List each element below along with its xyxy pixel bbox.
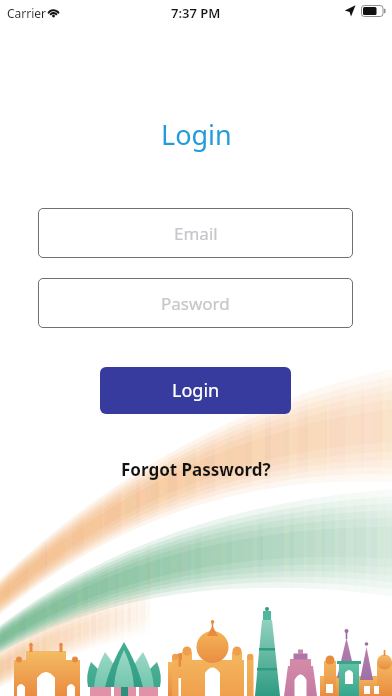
staticText: Forgot Password? [121,458,271,481]
staticText: 7:37 PM [171,4,221,22]
staticText: Login [172,378,220,403]
button[interactable]: Pasword [38,278,353,328]
button[interactable]: Email [38,208,353,258]
button[interactable]: Login [100,367,291,414]
staticText: Carrier [7,5,47,21]
staticText: Email [174,222,218,245]
staticText: Pasword [161,292,230,315]
button[interactable]: Forgot Password? [121,458,271,481]
staticText: Login [161,116,232,153]
